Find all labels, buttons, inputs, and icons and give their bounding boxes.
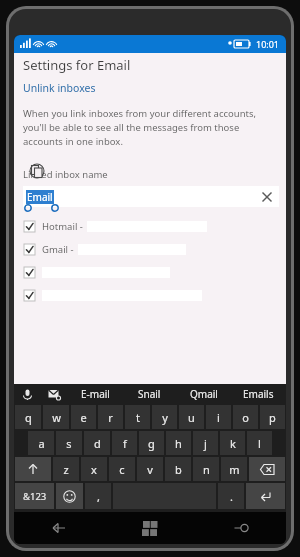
staticText: u: [188, 410, 195, 425]
button[interactable]: l: [247, 431, 272, 455]
staticText: x: [91, 462, 97, 477]
button[interactable]: d: [84, 431, 110, 455]
button[interactable]: Enter: [246, 483, 285, 509]
button[interactable]: Emails: [231, 384, 286, 404]
staticText: w: [52, 410, 61, 425]
button[interactable]: Email: [23, 186, 279, 207]
staticText: l: [258, 436, 261, 451]
button[interactable]: Snail: [122, 384, 176, 404]
button[interactable]: t: [125, 405, 150, 429]
staticText: g: [148, 436, 155, 451]
staticText: h: [175, 436, 182, 451]
button[interactable]: x: [81, 457, 107, 481]
button[interactable]: Shift: [15, 457, 51, 481]
staticText: e: [80, 410, 87, 425]
staticText: i: [217, 410, 220, 425]
staticText: b: [175, 462, 182, 477]
button[interactable]: Gmail -: [14, 238, 286, 261]
button[interactable]: n: [193, 457, 219, 481]
button[interactable]: s: [56, 431, 82, 455]
staticText: z: [63, 462, 69, 477]
button[interactable]: Emoji: [56, 483, 83, 509]
button[interactable]: q: [15, 405, 41, 429]
staticText: d: [94, 436, 101, 451]
staticText: .: [230, 489, 233, 504]
staticText: y: [162, 410, 168, 425]
button[interactable]: f: [112, 431, 137, 455]
button[interactable]: k: [220, 431, 245, 455]
button[interactable]: .: [218, 483, 244, 509]
button[interactable]: o: [233, 405, 258, 429]
staticText: Snail: [138, 387, 161, 401]
button[interactable]: &123: [15, 483, 54, 509]
staticText: r: [108, 410, 113, 425]
staticText: o: [242, 410, 249, 425]
button[interactable]: i: [206, 405, 231, 429]
button[interactable]: ,: [85, 483, 111, 509]
staticText: t: [136, 410, 140, 425]
staticText: Settings for Email: [23, 56, 131, 74]
staticText: f: [123, 436, 127, 451]
staticText: Qmail: [190, 387, 218, 401]
button[interactable]: j: [193, 431, 218, 455]
staticText: s: [66, 436, 72, 451]
button[interactable]: b: [165, 457, 191, 481]
button[interactable]: y: [152, 405, 177, 429]
button[interactable]: h: [166, 431, 191, 455]
staticText: Email: [27, 190, 53, 204]
staticText: n: [203, 462, 210, 477]
staticText: When you link inboxes from your differen…: [23, 107, 257, 148]
button[interactable]: [14, 284, 286, 307]
button[interactable]: Email suggestions: [40, 384, 68, 404]
button[interactable]: r: [98, 405, 123, 429]
button[interactable]: v: [137, 457, 163, 481]
button[interactable]: Clear: [260, 190, 274, 204]
staticText: &123: [23, 490, 47, 503]
staticText: c: [119, 462, 125, 477]
button[interactable]: Hotmail -: [14, 215, 286, 238]
button[interactable]: g: [139, 431, 164, 455]
button[interactable]: Unlink inboxes: [23, 81, 96, 95]
staticText: Hotmail -: [42, 220, 83, 233]
staticText: E-mail: [81, 387, 110, 401]
button[interactable]: E-mail: [68, 384, 122, 404]
button[interactable]: w: [43, 405, 69, 429]
button[interactable]: Copy: [26, 163, 48, 179]
staticText: ,: [97, 489, 100, 504]
button[interactable]: p: [260, 405, 285, 429]
button[interactable]: Search: [195, 512, 286, 544]
staticText: j: [204, 436, 207, 451]
button[interactable]: Voice input: [14, 384, 40, 404]
button[interactable]: z: [53, 457, 79, 481]
staticText: Gmail -: [42, 243, 74, 256]
button[interactable]: c: [109, 457, 135, 481]
staticText: 10:01: [256, 38, 280, 50]
button[interactable]: Backspace: [249, 457, 285, 481]
button[interactable]: u: [179, 405, 204, 429]
staticText: m: [229, 462, 240, 477]
staticText: v: [147, 462, 153, 477]
staticText: a: [38, 436, 45, 451]
button[interactable]: Back: [14, 512, 104, 544]
button[interactable]: Qmail: [176, 384, 231, 404]
staticText: k: [230, 436, 236, 451]
button[interactable]: a: [28, 431, 54, 455]
button[interactable]: Start: [104, 512, 195, 544]
button[interactable]: e: [71, 405, 96, 429]
staticText: q: [25, 410, 32, 425]
staticText: Linked inbox name: [23, 168, 108, 181]
staticText: Emails: [243, 387, 274, 401]
button[interactable]: m: [221, 457, 247, 481]
button[interactable]: [14, 261, 286, 284]
staticText: p: [269, 410, 276, 425]
